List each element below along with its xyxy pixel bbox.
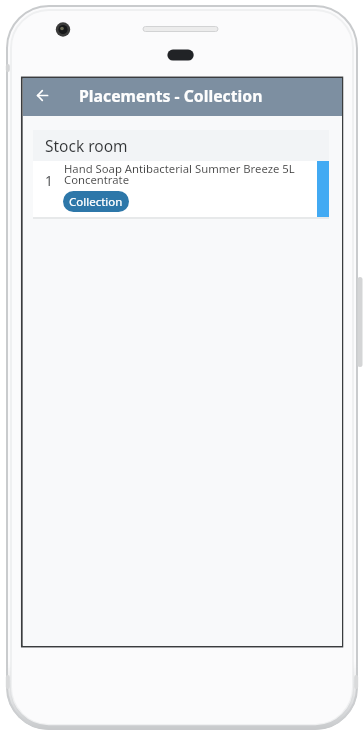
staticText: Stock room [45,135,128,156]
staticText: Placements - Collection [79,85,263,107]
button[interactable] [23,78,61,116]
staticText: Concentrate [64,172,130,187]
button[interactable]: 1 [33,161,329,217]
staticText: Hand Soap Antibacterial Summer Breeze 5L [64,161,295,176]
staticText: Collection [69,194,123,210]
button[interactable]: Stock room [33,130,329,161]
button[interactable]: Collection [63,191,129,212]
staticText: 1 [45,172,53,190]
